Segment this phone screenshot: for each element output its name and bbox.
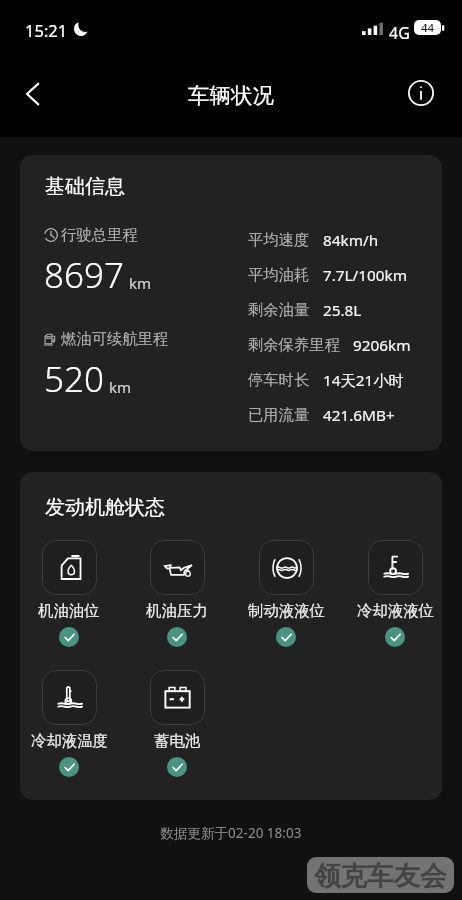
button[interactable]: 冷却液液位 — [350, 540, 440, 647]
staticText: 4G — [389, 22, 410, 44]
staticText: 15:21 — [25, 19, 68, 41]
button[interactable]: 机油油位 — [24, 540, 114, 647]
staticText: 基础信息 — [45, 174, 125, 199]
staticText: 44 — [421, 20, 435, 35]
button[interactable]: 冷却液温度 — [24, 670, 114, 777]
button[interactable]: Info — [397, 69, 445, 117]
staticText: 平均油耗 — [248, 265, 310, 284]
staticText: km — [109, 377, 132, 397]
staticText: 9206km — [353, 335, 411, 356]
staticText: 行驶总里程 — [61, 225, 138, 244]
staticText: 数据更新于02-20 18:03 — [0, 824, 462, 842]
staticText: 蓄电池 — [154, 731, 201, 750]
button[interactable]: 蓄电池 — [132, 670, 222, 777]
staticText: 平均速度 — [248, 230, 310, 249]
staticText: 14天21小时 — [323, 370, 404, 391]
staticText: 421.6MB+ — [323, 405, 395, 426]
staticText: 已用流量 — [248, 405, 310, 424]
staticText: 8697 — [44, 251, 124, 299]
button[interactable]: 制动液液位 — [241, 540, 331, 647]
staticText: 制动液液位 — [248, 601, 325, 620]
staticText: 燃油可续航里程 — [61, 329, 169, 348]
staticText: 机油油位 — [38, 601, 100, 620]
staticText: 机油压力 — [146, 601, 208, 620]
staticText: 车辆状况 — [188, 82, 274, 109]
staticText: 冷却液温度 — [31, 731, 108, 750]
staticText: 领克车友会 — [314, 859, 447, 892]
staticText: 剩余保养里程 — [248, 335, 340, 354]
staticText: 84km/h — [323, 230, 379, 251]
staticText: 停车时长 — [248, 370, 310, 389]
staticText: 发动机舱状态 — [45, 495, 165, 520]
staticText: km — [129, 273, 152, 293]
staticText: 520 — [44, 355, 104, 403]
staticText: 剩余油量 — [248, 300, 310, 319]
staticText: 25.8L — [323, 300, 362, 321]
staticText: 冷却液液位 — [357, 601, 434, 620]
button[interactable]: Back — [9, 70, 57, 118]
staticText: 7.7L/100km — [323, 265, 408, 286]
button[interactable]: 机油压力 — [132, 540, 222, 647]
